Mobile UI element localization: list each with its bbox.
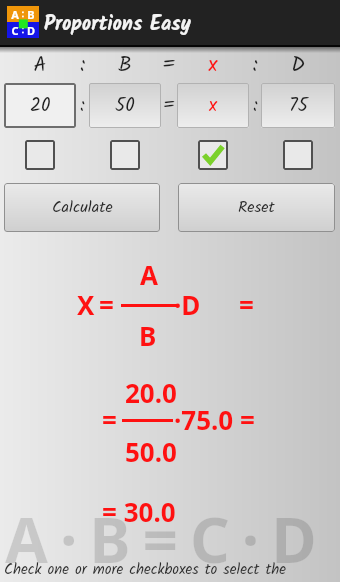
staticText: = — [99, 287, 114, 322]
button[interactable]: Unchecked — [110, 140, 140, 170]
button[interactable]: Reset — [178, 183, 335, 232]
button[interactable]: Unchecked — [25, 140, 55, 170]
button[interactable]: 50 — [89, 83, 161, 128]
staticText: 75 — [289, 91, 308, 121]
button[interactable]: 20 — [4, 83, 76, 128]
staticText: Calculate — [52, 195, 113, 221]
staticText: A — [4, 49, 76, 82]
staticText: D — [261, 49, 335, 82]
staticText: ·D — [174, 287, 201, 322]
button[interactable]: Checked — [198, 140, 228, 170]
staticText: x — [177, 49, 249, 82]
staticText: : — [249, 49, 261, 82]
staticText: = — [102, 402, 117, 437]
staticText: X — [77, 287, 95, 322]
staticText: A — [7, 7, 23, 22]
staticText: C — [7, 23, 23, 38]
staticText: Check one or more checkboxes to select t… — [4, 558, 286, 582]
staticText: Proportions Easy — [44, 9, 191, 41]
staticText: : — [80, 91, 85, 121]
staticText: Reset — [238, 195, 275, 221]
staticText: D — [23, 23, 39, 38]
staticText: : — [253, 91, 258, 121]
staticText: 20.0 — [125, 375, 177, 410]
staticText: B — [89, 49, 161, 82]
staticText: 50.0 — [125, 434, 177, 469]
staticText: x — [209, 91, 218, 121]
staticText: B — [23, 7, 39, 22]
staticText: ·75.0 = — [174, 402, 255, 437]
button[interactable]: Calculate — [4, 183, 160, 232]
staticText: = — [161, 49, 177, 82]
staticText: A — [140, 257, 158, 292]
staticText: = — [163, 91, 175, 121]
staticText: = 30.0 — [102, 494, 176, 529]
button[interactable]: Unchecked — [283, 140, 313, 170]
staticText: A·B=C·D — [5, 497, 329, 581]
staticText: : — [76, 49, 89, 82]
button[interactable]: x — [177, 83, 249, 128]
staticText: 20 — [30, 91, 51, 121]
staticText: B — [139, 318, 157, 353]
staticText: 50 — [115, 91, 135, 121]
staticText: = — [239, 287, 254, 322]
button[interactable]: 75 — [261, 83, 335, 128]
